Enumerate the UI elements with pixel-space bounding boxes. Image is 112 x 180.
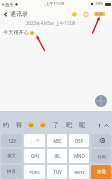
button[interactable]: 拼音 — [1, 165, 22, 179]
button[interactable]: ,。?! — [24, 134, 45, 147]
staticText: 无服务 — [1, 2, 14, 7]
button[interactable]: 红包 — [94, 12, 105, 16]
staticText: 约 — [3, 121, 9, 129]
staticText: MNO — [74, 153, 85, 159]
staticText: 发送 — [97, 169, 106, 175]
button[interactable]: TUV — [47, 165, 67, 179]
staticText: 上午11:09 — [45, 1, 65, 7]
button[interactable]: MNO — [69, 149, 89, 163]
button[interactable]: JKL — [47, 149, 67, 163]
staticText: 呢 — [79, 121, 85, 129]
staticText: 今天很开心 — [3, 29, 29, 36]
button[interactable]: 得 — [15, 121, 23, 129]
button[interactable]: Collapse keyboard — [103, 122, 110, 129]
staticText: 分词 — [97, 154, 106, 159]
button[interactable]: Lantern — [81, 9, 91, 19]
button[interactable]: Back — [1, 10, 10, 19]
staticText: 拼音 — [7, 169, 16, 175]
staticText: 英文 — [7, 153, 16, 159]
staticText: 了 — [53, 121, 59, 129]
button[interactable]: 发送 — [91, 165, 111, 179]
staticText: PQRS — [29, 170, 40, 175]
button[interactable]: 了 — [52, 121, 60, 129]
button[interactable]: GHI — [24, 149, 45, 163]
button[interactable] — [28, 122, 34, 128]
button[interactable]: More — [96, 122, 102, 128]
staticText: TUV — [53, 169, 62, 175]
button[interactable]: 吧 — [65, 121, 73, 129]
staticText: JKL — [54, 153, 61, 159]
staticText: 红包 — [96, 12, 103, 16]
staticText: 2023年4月5日 上午11:09 — [26, 20, 76, 26]
button[interactable]: Red packet — [69, 9, 79, 19]
button[interactable]: WXYZ — [69, 165, 89, 179]
staticText: ABC — [53, 138, 62, 144]
staticText: GHI — [31, 153, 39, 159]
button[interactable]: PQRS — [24, 165, 45, 179]
button[interactable] — [40, 122, 46, 128]
button[interactable]: Add — [95, 95, 107, 107]
button[interactable]: 分词 — [91, 149, 111, 163]
staticText: 得 — [16, 121, 22, 129]
staticText: ,。?! — [31, 138, 39, 143]
button[interactable]: Backspace — [91, 134, 111, 147]
button[interactable]: 约 — [2, 121, 10, 129]
staticText: 123 — [8, 138, 16, 144]
button[interactable]: DEF — [69, 134, 89, 147]
staticText: 78% — [95, 1, 104, 7]
button[interactable]: ABC — [47, 134, 67, 147]
staticText: 吧 — [66, 121, 72, 129]
button[interactable]: 英文 — [1, 149, 22, 163]
button[interactable]: 今天很开心 — [3, 29, 34, 36]
staticText: DEF — [75, 138, 83, 144]
button[interactable]: 123 — [1, 134, 22, 147]
button[interactable]: 呢 — [78, 121, 86, 129]
staticText: 通讯录 — [10, 10, 28, 18]
staticText: WXYZ — [74, 170, 85, 175]
